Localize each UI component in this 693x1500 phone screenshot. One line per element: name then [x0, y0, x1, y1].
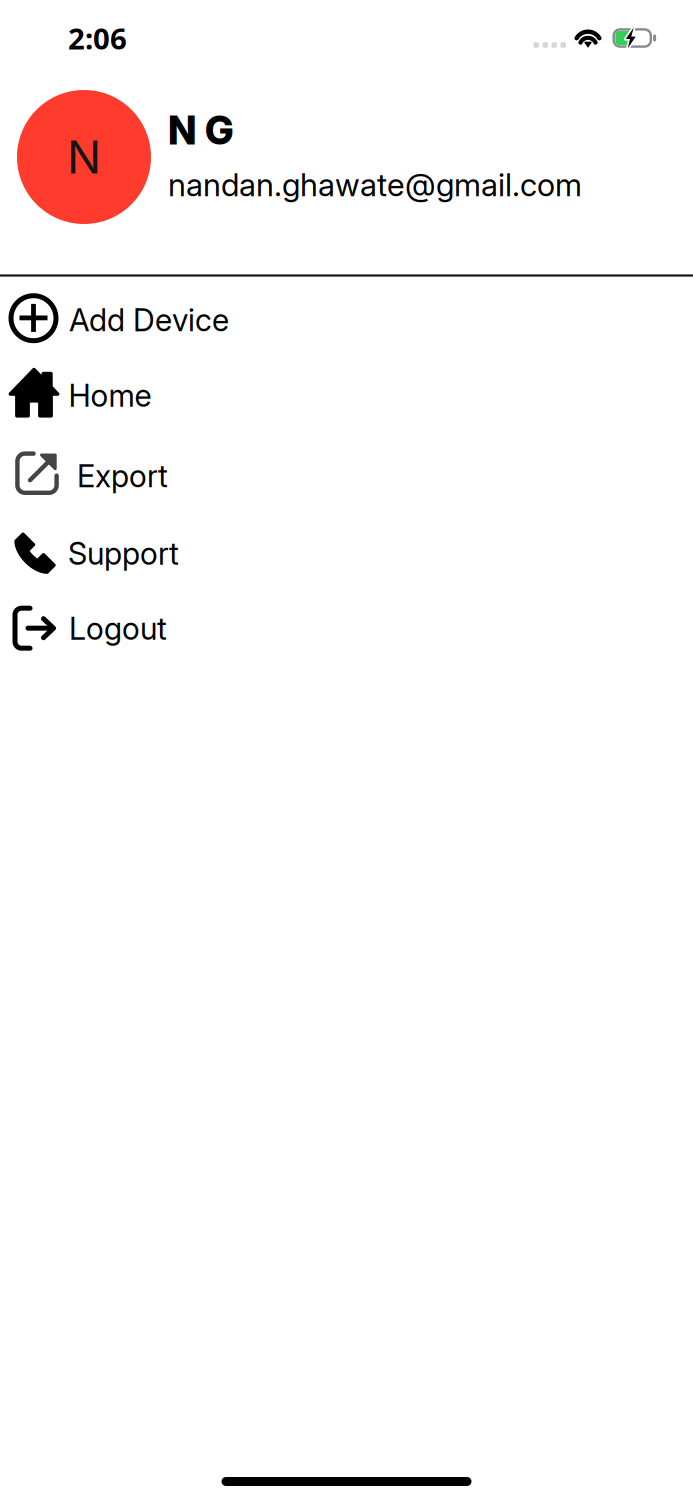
staticText: 2:06: [68, 18, 127, 58]
staticText: Logout: [69, 610, 167, 647]
button[interactable]: Support: [0, 510, 693, 589]
button[interactable]: Export: [0, 430, 693, 510]
staticText: nandan.ghawate@gmail.com: [168, 166, 582, 204]
staticText: N G: [168, 107, 234, 154]
button[interactable]: Add Device: [0, 275, 693, 361]
staticText: Support: [68, 535, 179, 572]
staticText: Export: [77, 458, 168, 495]
button[interactable]: Logout: [0, 589, 693, 666]
staticText: Home: [68, 377, 151, 414]
staticText: N: [67, 130, 101, 184]
button[interactable]: Home: [0, 361, 693, 430]
staticText: Add Device: [69, 302, 229, 339]
